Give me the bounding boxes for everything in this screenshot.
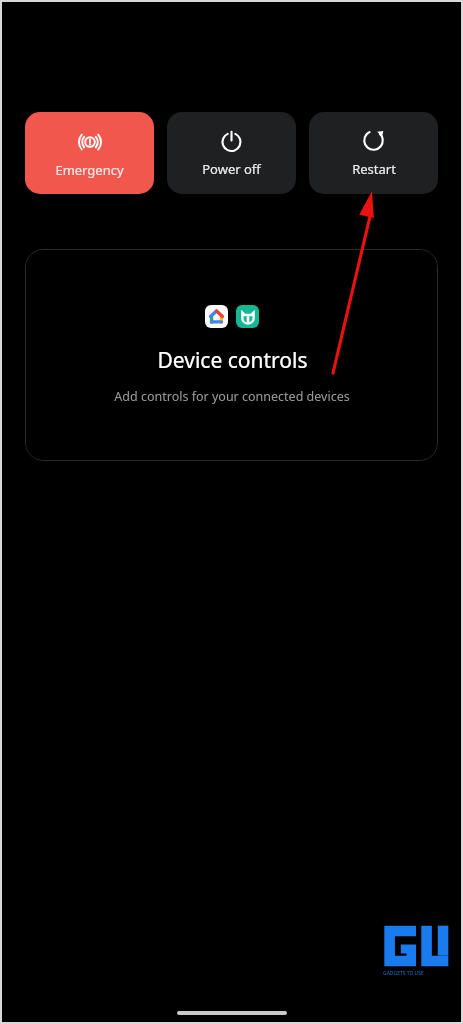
button[interactable]: Power off [167, 112, 296, 194]
staticText: GADGETS TO USE [383, 970, 424, 977]
button[interactable]: Emergency [25, 112, 154, 194]
staticText: Restart [352, 160, 396, 178]
staticText: Add controls for your connected devices [114, 388, 350, 405]
button[interactable]: Google Home [205, 305, 228, 328]
button[interactable]: Mi Home [236, 305, 259, 328]
staticText: Power off [202, 160, 261, 178]
button[interactable]: Google Home [25, 249, 438, 461]
staticText: Device controls [157, 346, 308, 375]
staticText: Emergency [55, 161, 124, 179]
button[interactable]: Restart [309, 112, 438, 194]
